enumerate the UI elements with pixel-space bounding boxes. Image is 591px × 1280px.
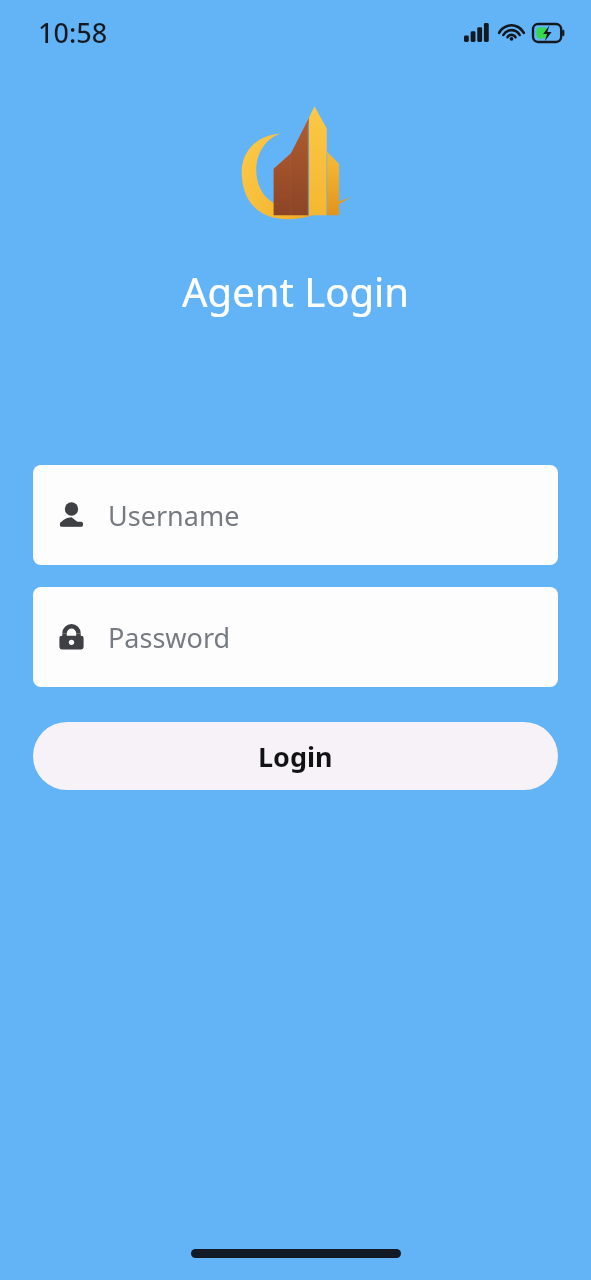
staticText: Username [108, 497, 240, 534]
other: Password [56, 622, 87, 653]
staticText: Password [108, 619, 231, 656]
button[interactable]: Username [33, 465, 558, 565]
other: Username [56, 500, 87, 531]
staticText: Login [258, 738, 333, 775]
button[interactable]: Password [33, 587, 558, 687]
staticText: 10:58 [38, 14, 108, 51]
staticText: Agent Login [182, 264, 410, 318]
button[interactable]: Login [33, 722, 558, 790]
